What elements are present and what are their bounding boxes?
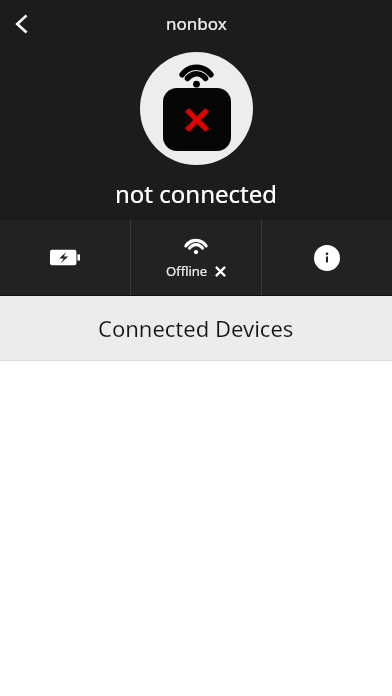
button[interactable]: Battery charging bbox=[0, 220, 130, 295]
button[interactable]: Offline bbox=[131, 220, 261, 295]
staticText: nonbox bbox=[166, 12, 227, 35]
button[interactable]: Back bbox=[4, 6, 40, 42]
button[interactable]: Connected Devices bbox=[0, 296, 392, 360]
button[interactable]: Info bbox=[262, 220, 392, 295]
staticText: Connected Devices bbox=[98, 313, 294, 343]
staticText: Offline bbox=[166, 262, 208, 280]
staticText: not connected bbox=[0, 177, 392, 210]
